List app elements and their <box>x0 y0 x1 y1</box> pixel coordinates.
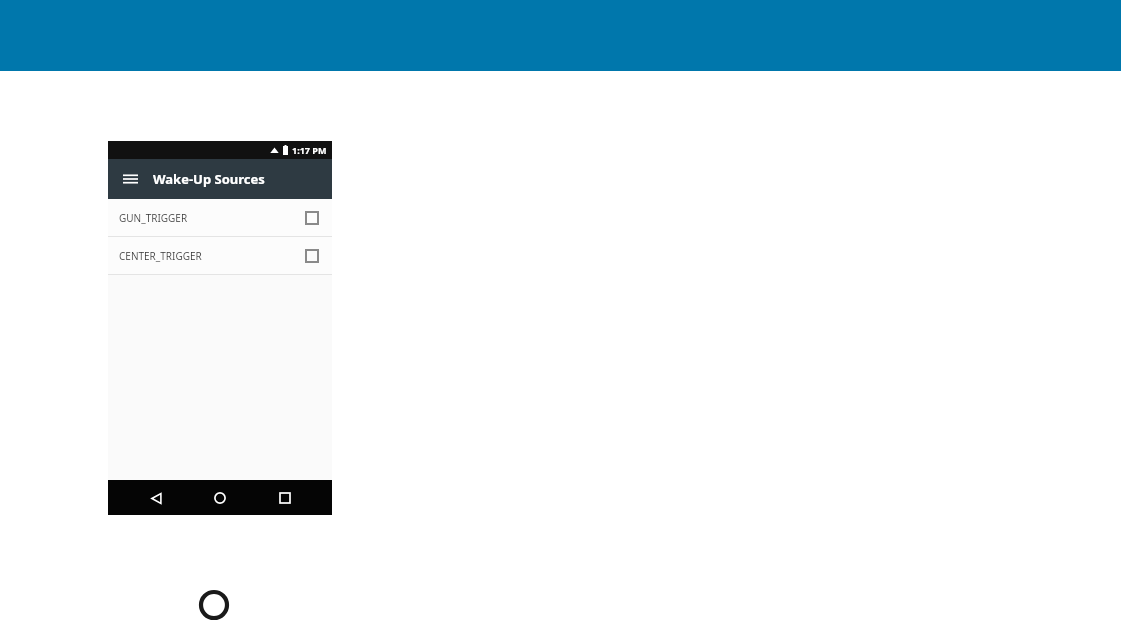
button[interactable]: Home <box>203 481 237 515</box>
staticText: 1:17 PM <box>292 144 327 156</box>
button[interactable]: Back <box>139 481 173 515</box>
staticText: CENTER_TRIGGER <box>119 249 202 263</box>
button[interactable]: Open navigation drawer <box>117 166 143 192</box>
button[interactable]: Recent apps <box>268 481 302 515</box>
button[interactable]: Toggle GUN_TRIGGER <box>302 208 322 228</box>
button[interactable]: CENTER_TRIGGER <box>108 237 332 274</box>
staticText: Wake-Up Sources <box>153 170 265 188</box>
staticText: GUN_TRIGGER <box>119 211 188 225</box>
button[interactable]: GUN_TRIGGER <box>108 199 332 236</box>
button[interactable]: Toggle CENTER_TRIGGER <box>302 246 322 266</box>
